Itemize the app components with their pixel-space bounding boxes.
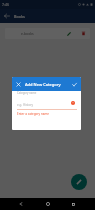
button[interactable]: Add category <box>71 174 87 190</box>
button[interactable]: Home <box>43 199 53 209</box>
staticText: Enter a category name <box>17 112 49 116</box>
button[interactable]: Recents <box>68 199 78 209</box>
button[interactable]: Save <box>68 78 81 91</box>
button[interactable]: e-books <box>5 28 90 39</box>
staticText: Books <box>14 14 25 19</box>
staticText: Category name <box>17 91 37 95</box>
staticText: Add New Category <box>25 82 61 87</box>
staticText: 7:46 <box>2 2 10 7</box>
button[interactable]: Back <box>0 9 13 23</box>
button[interactable]: Delete <box>78 28 89 39</box>
staticText: e.g. History <box>17 103 34 107</box>
button[interactable]: Edit <box>63 28 74 39</box>
staticText: e-books <box>21 31 34 36</box>
button[interactable]: Back <box>16 199 26 209</box>
button[interactable]: Close <box>12 78 25 91</box>
